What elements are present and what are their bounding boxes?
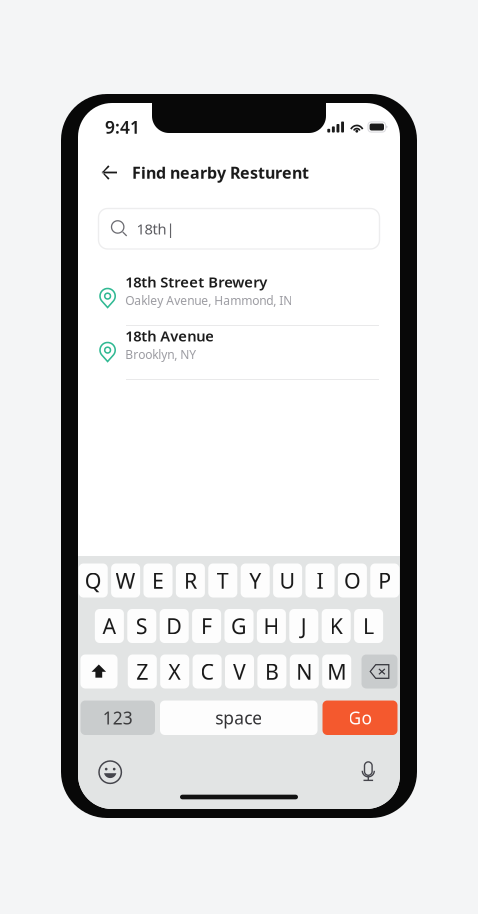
button[interactable]: A [95,609,124,643]
button[interactable]: Y [241,563,270,597]
staticText: Find nearby Resturent [132,162,309,183]
button[interactable]: T [208,563,237,597]
staticText: 18th| [136,219,174,238]
staticText: F [201,612,212,640]
button[interactable]: Shift [80,654,117,688]
staticText: Q [85,566,102,595]
button[interactable]: X [160,654,189,688]
staticText: S [136,612,148,640]
button[interactable]: E [143,563,172,597]
staticText: J [301,612,307,640]
button[interactable]: I [305,563,334,597]
staticText: V [233,657,246,686]
staticText: Y [249,566,261,595]
staticText: M [327,657,346,686]
button[interactable]: W [111,563,140,597]
button[interactable]: R [176,563,205,597]
button[interactable]: Z [128,654,157,688]
staticText: Brooklyn, NY [125,346,196,362]
button[interactable]: K [322,609,351,643]
button[interactable]: Emoji keyboard [99,761,121,783]
staticText: U [280,566,296,595]
button[interactable]: D [160,609,189,643]
button[interactable]: N [290,654,319,688]
staticText: 18th Street Brewery [125,272,267,291]
button[interactable]: C [193,654,222,688]
button[interactable]: Go [322,700,397,735]
staticText: P [378,566,391,595]
staticText: K [330,612,343,640]
staticText: N [296,657,312,686]
button[interactable]: L [354,609,383,643]
staticText: Go [348,706,371,729]
button[interactable]: space [160,700,317,735]
staticText: B [265,657,279,686]
button[interactable]: Dictation [362,762,375,783]
staticText: D [166,612,182,640]
staticText: H [263,612,279,640]
staticText: G [231,612,247,640]
button[interactable]: 123 [80,700,155,735]
button[interactable]: 18th Avenue [78,326,400,380]
button[interactable]: P [370,563,399,597]
button[interactable]: B [257,654,286,688]
button[interactable]: J [289,609,318,643]
staticText: A [102,612,116,640]
staticText: T [217,566,229,595]
staticText: 123 [103,706,133,729]
button[interactable]: H [257,609,286,643]
staticText: I [316,566,323,595]
button[interactable]: Back [101,156,132,188]
staticText: L [363,612,374,640]
staticText: 9:41 [105,115,140,138]
staticText: W [116,566,136,595]
staticText: O [344,566,361,595]
staticText: E [152,566,164,595]
button[interactable]: 18th| [98,208,379,249]
staticText: Oakley Avenue, Hammond, IN [125,292,292,308]
staticText: R [184,566,197,595]
button[interactable]: M [322,654,351,688]
button[interactable]: Delete [361,654,397,688]
staticText: Z [136,657,148,686]
staticText: C [201,657,214,686]
staticText: X [168,657,181,686]
button[interactable]: S [127,609,156,643]
staticText: 18th Avenue [125,326,214,345]
button[interactable]: Q [79,563,108,597]
button[interactable]: G [224,609,253,643]
staticText: space [215,706,262,729]
button[interactable]: U [273,563,302,597]
button[interactable]: O [338,563,367,597]
button[interactable]: F [192,609,221,643]
button[interactable]: 18th Street Brewery [78,272,400,326]
button[interactable]: V [225,654,254,688]
